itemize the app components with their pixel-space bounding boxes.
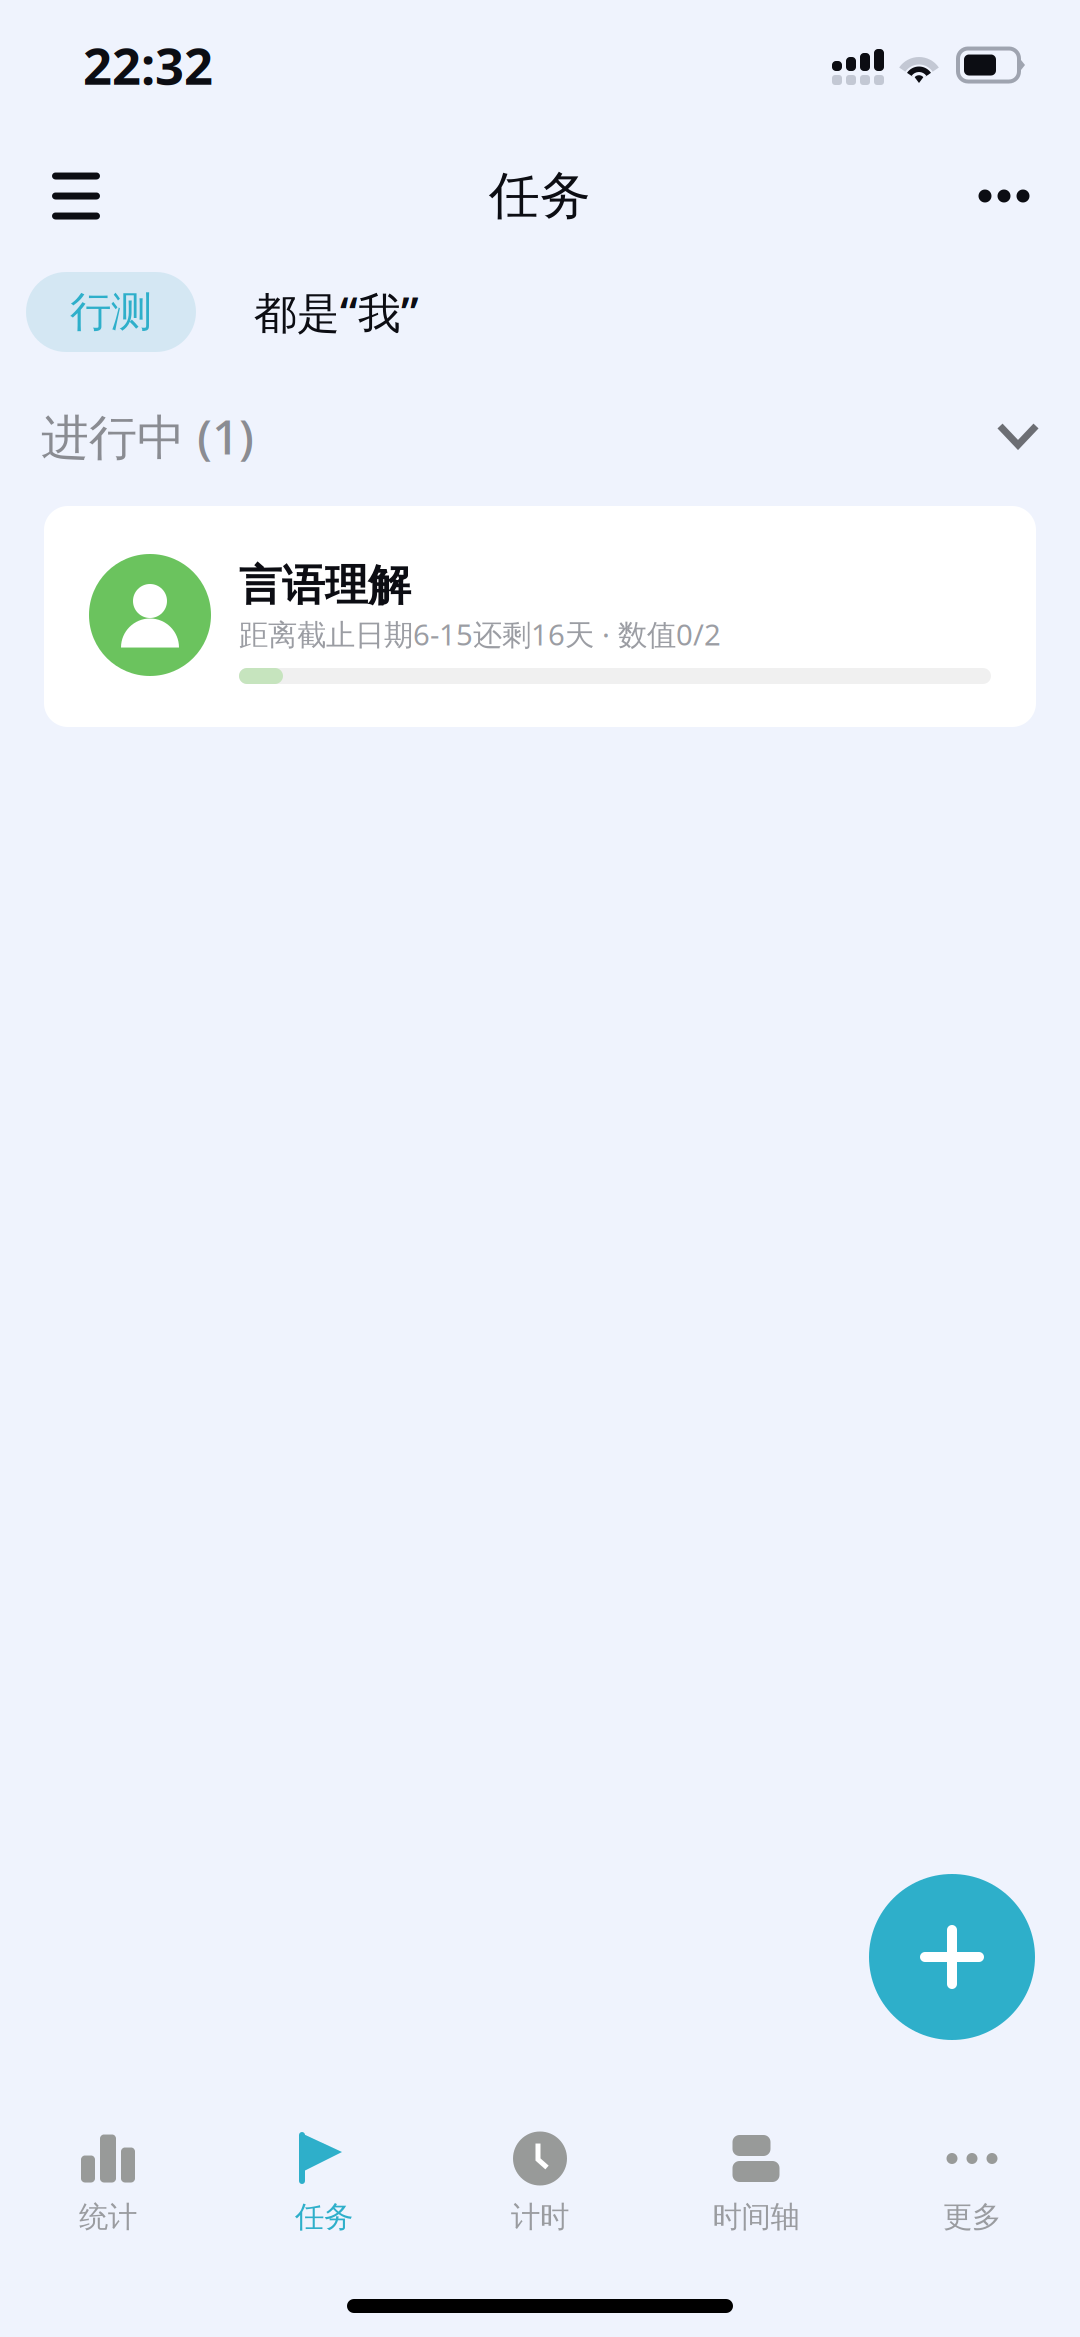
staticText: 进行中 (1) bbox=[41, 404, 254, 468]
staticText: 任务 bbox=[295, 2199, 353, 2235]
button[interactable]: 更多 bbox=[864, 2132, 1080, 2262]
button[interactable]: More options bbox=[956, 148, 1052, 244]
button[interactable]: 行测 bbox=[26, 272, 196, 352]
staticText: 距离截止日期6-15还剩16天 · 数值0/2 bbox=[239, 614, 721, 653]
button[interactable]: 计时 bbox=[432, 2132, 648, 2262]
staticText: 时间轴 bbox=[712, 2199, 799, 2235]
staticText: 行测 bbox=[70, 287, 152, 337]
staticText: 计时 bbox=[511, 2199, 569, 2235]
button[interactable]: 都是“我” bbox=[254, 272, 419, 352]
button[interactable]: Menu bbox=[28, 148, 124, 244]
staticText: 都是“我” bbox=[254, 284, 419, 340]
staticText: 言语理解 bbox=[239, 559, 411, 612]
button[interactable]: 任务 bbox=[216, 2132, 432, 2262]
staticText: 统计 bbox=[79, 2199, 137, 2235]
button[interactable]: 时间轴 bbox=[648, 2132, 864, 2262]
button[interactable]: 言语理解 bbox=[44, 506, 1036, 727]
staticText: 更多 bbox=[943, 2199, 1001, 2235]
button[interactable]: 进行中 (1) bbox=[0, 410, 1080, 462]
button[interactable]: 统计 bbox=[0, 2132, 216, 2262]
staticText: 22:32 bbox=[83, 31, 213, 99]
staticText: 任务 bbox=[489, 165, 591, 227]
button[interactable]: Add task bbox=[869, 1874, 1035, 2040]
